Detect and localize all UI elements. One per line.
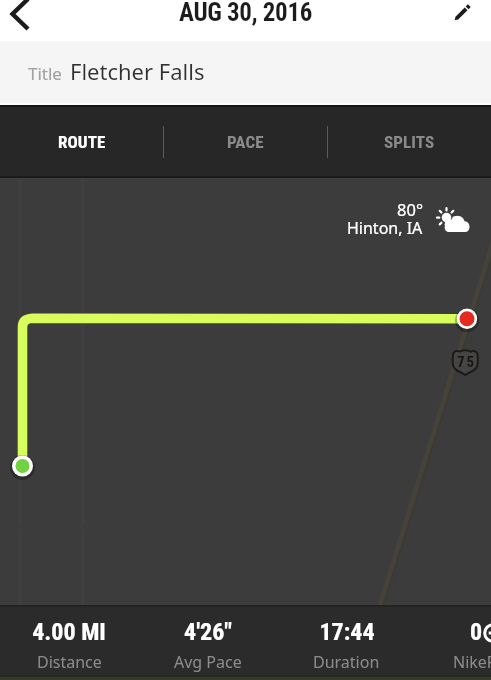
staticText: 0 — [470, 618, 483, 646]
button[interactable]: Back — [0, 0, 44, 41]
staticText: Duration — [313, 651, 380, 673]
staticText: 75 — [457, 353, 477, 371]
button[interactable]: 4'26" — [138, 605, 277, 675]
button[interactable]: SPLITS — [328, 105, 491, 178]
staticText: Hinton, IA — [347, 217, 423, 239]
staticText: 17:44 — [319, 618, 375, 646]
staticText: Distance — [37, 651, 102, 673]
button[interactable]: Title — [0, 41, 491, 105]
button[interactable]: 17:44 — [277, 605, 416, 675]
button[interactable]: 0 — [416, 605, 491, 675]
button[interactable]: ROUTE — [0, 105, 163, 178]
staticText: 4'26" — [184, 618, 232, 646]
staticText: AUG 30, 2016 — [179, 0, 312, 27]
button[interactable]: PACE — [164, 105, 327, 178]
staticText: 4.00 MI — [32, 618, 106, 646]
staticText: PACE — [227, 132, 264, 152]
staticText: Fletcher Falls — [70, 56, 205, 86]
staticText: ROUTE — [58, 132, 106, 152]
staticText: SPLITS — [384, 132, 435, 152]
staticText: NikeFuel — [453, 651, 491, 673]
button[interactable]: 4.00 MI — [0, 605, 138, 675]
button[interactable]: Edit — [447, 0, 491, 41]
staticText: 80° — [397, 198, 423, 220]
staticText: Title — [28, 62, 62, 85]
staticText: Avg Pace — [174, 651, 242, 673]
